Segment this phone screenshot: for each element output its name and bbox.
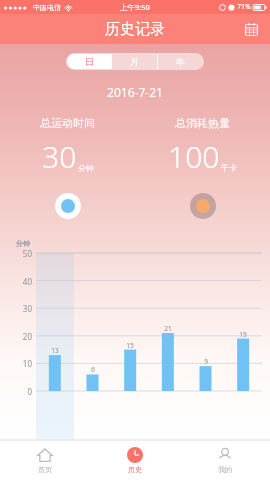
staticText: 日 <box>85 56 94 67</box>
staticText: 19 <box>233 330 253 339</box>
staticText: 中国电信 <box>33 3 61 12</box>
staticText: 9 <box>196 357 216 366</box>
button[interactable]: 我的 <box>180 440 270 480</box>
button[interactable]: 月 <box>112 54 157 69</box>
button[interactable]: Calendar <box>240 18 262 40</box>
button[interactable]: 首页 <box>0 440 90 480</box>
staticText: 30 <box>42 136 77 177</box>
staticText: 月 <box>130 56 139 67</box>
staticText: 6 <box>83 365 103 374</box>
staticText: 21 <box>158 324 178 333</box>
staticText: 分钟 <box>16 239 30 248</box>
staticText: 千卡 <box>221 163 237 173</box>
staticText: 100 <box>168 136 220 177</box>
staticText: 71% <box>237 2 251 12</box>
staticText: 总运动时间 <box>40 116 95 130</box>
staticText: 历史记录 <box>105 20 165 39</box>
staticText: 我的 <box>218 465 232 474</box>
staticText: 上午9:50 <box>120 2 150 12</box>
staticText: 0 <box>12 386 32 397</box>
staticText: 13 <box>45 346 65 355</box>
staticText: 50 <box>12 248 32 259</box>
button[interactable]: 年 <box>158 54 203 69</box>
staticText: 30 <box>12 303 32 314</box>
staticText: 历史 <box>128 465 142 474</box>
staticText: 40 <box>12 276 32 287</box>
button[interactable]: 历史 <box>90 440 180 480</box>
staticText: 10 <box>12 358 32 369</box>
staticText: 2016-7-21 <box>0 84 270 100</box>
staticText: 分钟 <box>78 163 94 173</box>
staticText: 首页 <box>38 465 52 474</box>
staticText: 15 <box>120 341 140 350</box>
staticText: 总消耗热量 <box>175 116 230 130</box>
button[interactable]: 日 <box>67 54 111 69</box>
staticText: 20 <box>12 331 32 342</box>
staticText: 年 <box>176 56 185 67</box>
